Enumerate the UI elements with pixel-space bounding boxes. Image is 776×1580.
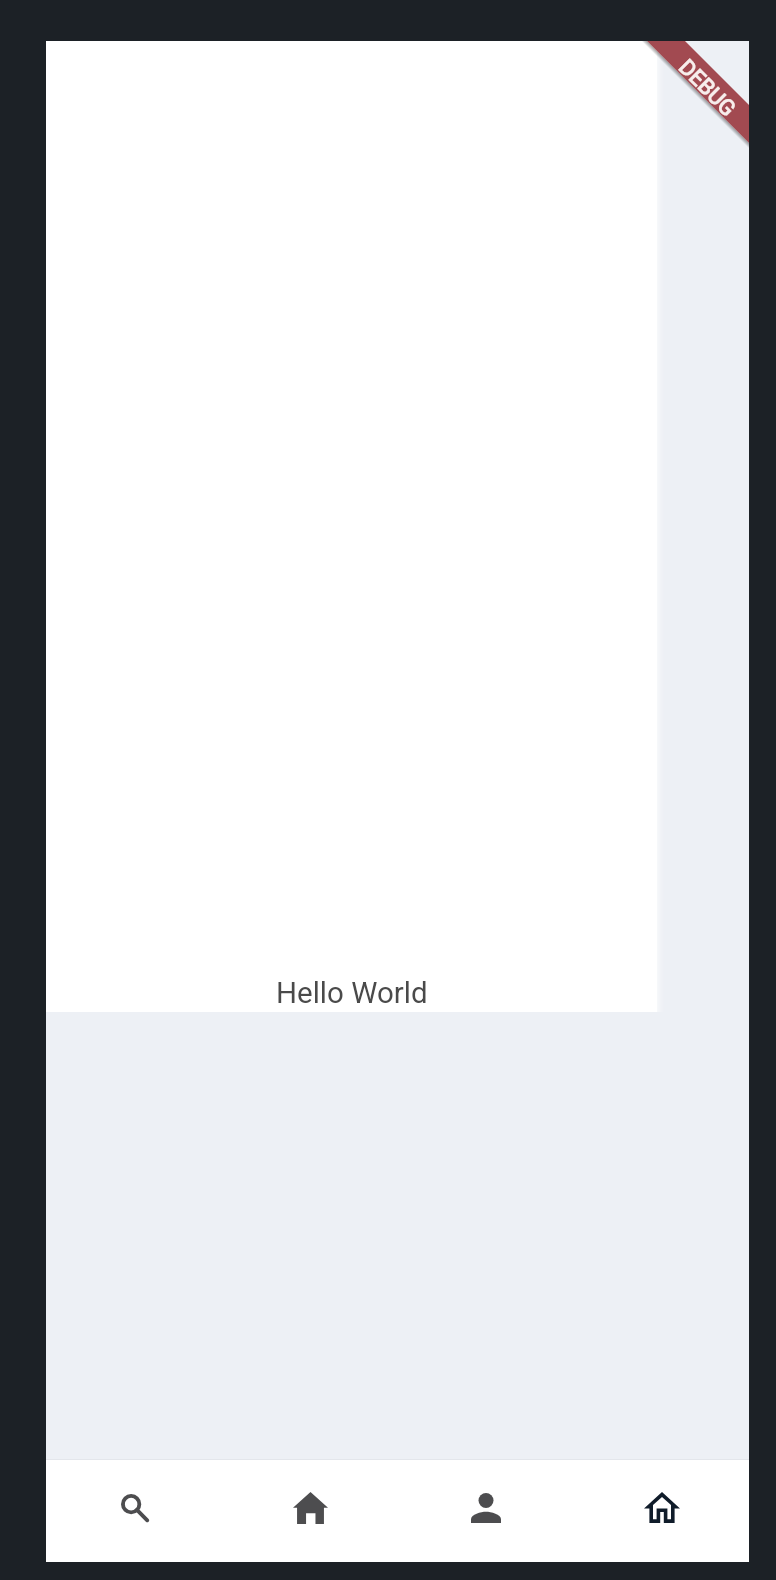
button[interactable]: Search [46,1459,221,1562]
staticText: DEBUG [673,54,741,122]
button[interactable]: Home selected [573,1459,749,1562]
button[interactable]: Home [221,1459,397,1562]
button[interactable]: Profile [397,1459,573,1562]
other: Debug banner [647,41,749,143]
staticText: Hello World [276,976,428,1011]
